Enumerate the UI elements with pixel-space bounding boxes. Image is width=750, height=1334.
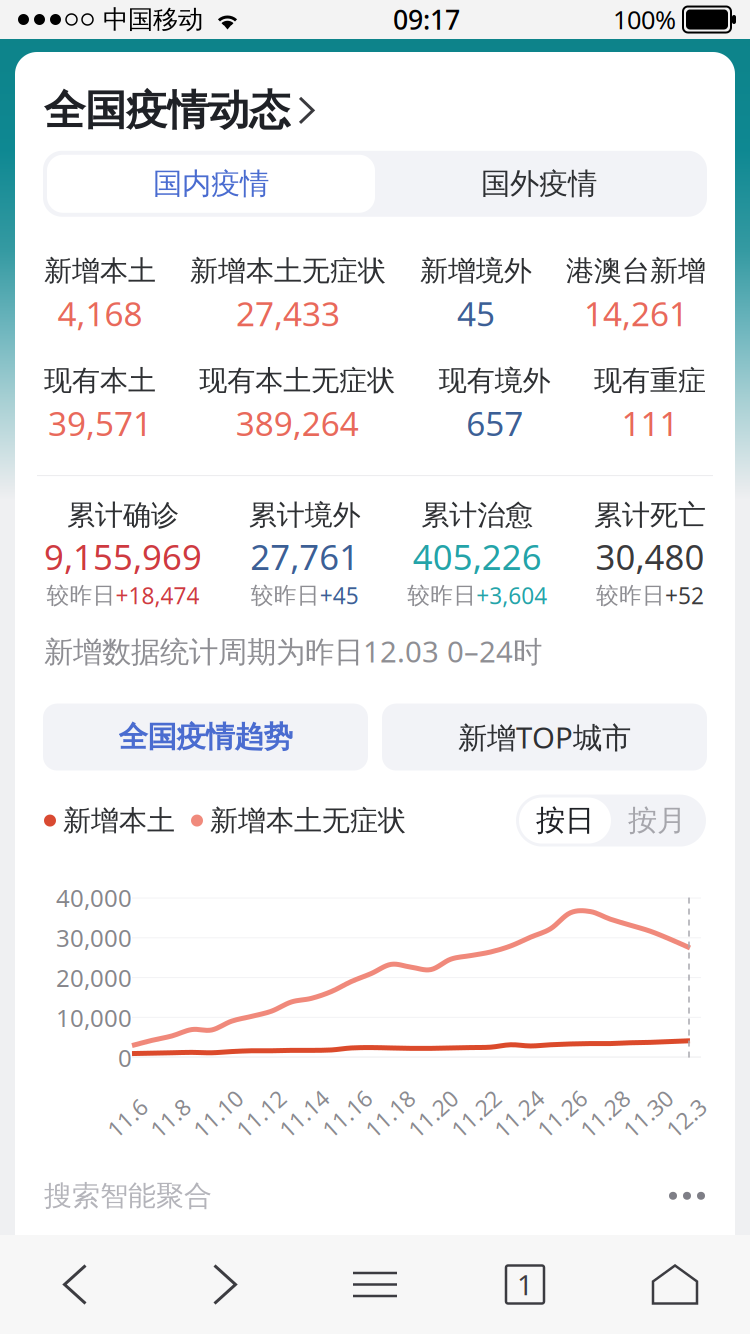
- button[interactable]: More: [659, 1182, 715, 1210]
- staticText: 较昨日: [596, 582, 665, 609]
- staticText: 按日: [536, 802, 594, 838]
- button[interactable]: Forward: [150, 1235, 300, 1334]
- staticText: 现有境外: [439, 363, 551, 398]
- staticText: 中国移动: [103, 4, 203, 35]
- staticText: 11.24: [492, 1103, 550, 1134]
- staticText: 现有本土: [44, 363, 156, 398]
- staticText: 11.30: [621, 1103, 679, 1134]
- staticText: 11.8: [148, 1103, 193, 1134]
- staticText: 389,264: [236, 401, 359, 445]
- staticText: 20,000: [56, 962, 132, 993]
- button[interactable]: 国外疫情: [375, 155, 703, 213]
- staticText: 11.14: [277, 1103, 335, 1134]
- staticText: 国内疫情: [153, 166, 269, 202]
- staticText: 全国疫情动态: [44, 85, 290, 136]
- button[interactable]: 全国疫情趋势: [43, 704, 368, 771]
- staticText: 新增TOP城市: [458, 718, 631, 757]
- staticText: 11.18: [363, 1103, 421, 1134]
- staticText: 国外疫情: [481, 166, 597, 202]
- button[interactable]: 全国疫情动态: [15, 52, 735, 151]
- staticText: 累计境外: [249, 498, 361, 532]
- staticText: 0: [118, 1042, 132, 1073]
- staticText: 较昨日: [251, 582, 320, 609]
- staticText: 11.20: [406, 1103, 464, 1134]
- staticText: 27,761: [250, 533, 359, 579]
- staticText: +3,604: [476, 580, 547, 611]
- button[interactable]: Home: [600, 1235, 750, 1334]
- staticText: 30,000: [56, 922, 132, 953]
- staticText: 较昨日: [46, 582, 115, 609]
- staticText: 新增数据统计周期为昨日12.03 0–24时: [44, 632, 542, 671]
- staticText: 30,480: [595, 533, 704, 579]
- staticText: 新增本土: [44, 254, 156, 288]
- staticText: 搜索智能聚合: [44, 1179, 212, 1213]
- staticText: 14,261: [584, 291, 688, 335]
- button[interactable]: 按日: [519, 798, 611, 844]
- staticText: 40,000: [56, 882, 132, 913]
- staticText: 45: [457, 291, 495, 335]
- staticText: 39,571: [48, 401, 152, 445]
- staticText: 9,155,969: [44, 533, 202, 579]
- staticText: 111: [621, 401, 678, 445]
- staticText: +18,474: [115, 580, 199, 611]
- staticText: 405,226: [413, 533, 542, 579]
- staticText: 11.28: [578, 1103, 636, 1134]
- staticText: 09:17: [393, 2, 460, 37]
- staticText: 累计确诊: [67, 498, 179, 532]
- button[interactable]: 按月: [611, 798, 703, 844]
- staticText: 按月: [628, 802, 686, 838]
- staticText: 11.26: [535, 1103, 593, 1134]
- staticText: 27,433: [236, 291, 340, 335]
- staticText: 累计死亡: [594, 498, 706, 532]
- staticText: 现有重症: [594, 363, 706, 398]
- staticText: 11.10: [191, 1103, 249, 1134]
- button[interactable]: Back: [0, 1235, 150, 1334]
- staticText: 新增境外: [420, 254, 532, 288]
- staticText: 新增本土无症状: [210, 803, 406, 838]
- staticText: 港澳台新增: [566, 254, 706, 288]
- button[interactable]: Menu: [300, 1235, 450, 1334]
- button[interactable]: 新增TOP城市: [382, 704, 707, 771]
- staticText: 11.16: [320, 1103, 378, 1134]
- staticText: 累计治愈: [421, 498, 533, 532]
- staticText: 1: [517, 1266, 533, 1303]
- button[interactable]: 国内疫情: [47, 155, 375, 213]
- staticText: +52: [665, 580, 704, 611]
- staticText: 新增本土无症状: [190, 254, 386, 288]
- button[interactable]: Tabs: [450, 1235, 600, 1334]
- staticText: 10,000: [56, 1002, 132, 1033]
- staticText: 现有本土无症状: [199, 363, 395, 398]
- staticText: 11.22: [449, 1103, 507, 1134]
- staticText: 较昨日: [407, 582, 476, 609]
- staticText: 12.3: [664, 1103, 709, 1134]
- staticText: 全国疫情趋势: [118, 719, 292, 755]
- staticText: 11.6: [105, 1103, 150, 1134]
- staticText: +45: [320, 580, 359, 611]
- staticText: 657: [466, 401, 523, 445]
- staticText: 4,168: [57, 291, 142, 335]
- staticText: 11.12: [234, 1103, 292, 1134]
- staticText: 新增本土: [63, 803, 175, 838]
- staticText: 100%: [613, 3, 676, 36]
